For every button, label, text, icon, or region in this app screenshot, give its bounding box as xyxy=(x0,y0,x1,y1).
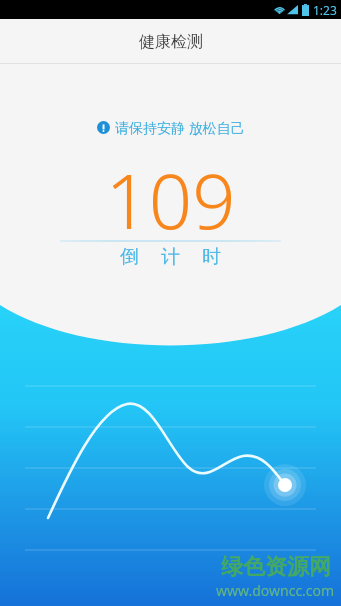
other: Info xyxy=(97,121,110,134)
staticText: 1:23 xyxy=(313,2,337,18)
staticText: 时 xyxy=(202,245,221,269)
staticText: 健康检测 xyxy=(139,32,203,52)
staticText: 计 xyxy=(161,245,180,269)
staticText: 请保持安静 放松自己 xyxy=(115,118,245,137)
staticText: www.downcc.com xyxy=(216,581,335,600)
button[interactable]: 健康检测 xyxy=(0,19,341,64)
staticText: 绿色资源网 xyxy=(221,553,331,581)
button[interactable]: Info xyxy=(0,118,341,137)
staticText: 109 xyxy=(105,148,236,252)
staticText: 倒 xyxy=(120,245,139,269)
